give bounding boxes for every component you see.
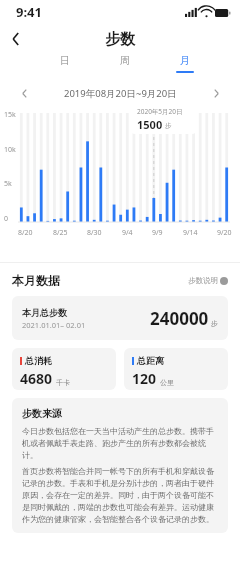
staticText: 5k bbox=[4, 179, 12, 189]
button[interactable]: 日 bbox=[48, 54, 82, 71]
staticText: 240000 bbox=[150, 307, 209, 330]
staticText: 9/9 bbox=[152, 228, 163, 238]
staticText: 公里 bbox=[160, 378, 174, 387]
staticText: 步 bbox=[165, 122, 172, 130]
staticText: 千卡 bbox=[56, 378, 70, 387]
button[interactable]: 步数说明 bbox=[188, 276, 228, 285]
staticText: 9/4 bbox=[122, 228, 133, 238]
button[interactable]: Previous period bbox=[12, 82, 36, 104]
button[interactable]: 月 bbox=[168, 54, 202, 73]
button[interactable]: Back bbox=[0, 24, 32, 54]
staticText: 8/25 bbox=[53, 228, 68, 238]
staticText: 9/14 bbox=[183, 228, 198, 238]
staticText: 本月总步数 bbox=[22, 307, 67, 318]
staticText: 总消耗 bbox=[25, 355, 52, 366]
button[interactable]: 总消耗 bbox=[12, 348, 116, 390]
staticText: 1500 bbox=[137, 117, 163, 131]
staticText: 本月数据 bbox=[12, 273, 60, 288]
staticText: 总距离 bbox=[137, 355, 164, 366]
staticText: 步数 bbox=[105, 30, 135, 49]
staticText: 2019年08月20日~9月20日 bbox=[64, 87, 177, 100]
staticText: 2020年5月20日 bbox=[137, 107, 183, 116]
staticText: 10k bbox=[4, 145, 16, 155]
staticText: 9:41 bbox=[16, 3, 42, 21]
staticText: 日 bbox=[60, 54, 70, 67]
button[interactable]: 周 bbox=[108, 54, 142, 71]
staticText: 周 bbox=[120, 54, 130, 67]
staticText: 0 bbox=[4, 214, 9, 224]
staticText: 8/30 bbox=[87, 228, 102, 238]
button[interactable]: 本月总步数 bbox=[12, 296, 228, 340]
button[interactable]: 总距离 bbox=[124, 348, 228, 390]
staticText: 9/20 bbox=[217, 228, 232, 238]
staticText: 15k bbox=[4, 110, 16, 120]
button[interactable]: Next period bbox=[204, 82, 228, 104]
staticText: 2021.01.01– 02.01 bbox=[22, 320, 86, 330]
staticText: 120 bbox=[132, 369, 157, 388]
staticText: 步数来源 bbox=[22, 407, 62, 420]
staticText: 首页步数将智能合并同一帐号下的所有手机和穿戴设备记录的步数。手表和手机是分别计步… bbox=[22, 466, 218, 524]
staticText: 步 bbox=[211, 319, 218, 328]
staticText: 月 bbox=[180, 54, 190, 67]
staticText: 今日步数包括您在一天当中活动产生的总步数。携带手机或者佩戴手表走路、跑步产生的所… bbox=[22, 426, 218, 460]
staticText: 4680 bbox=[20, 369, 53, 388]
staticText: 步数说明 bbox=[188, 276, 218, 285]
staticText: 8/20 bbox=[18, 228, 33, 238]
